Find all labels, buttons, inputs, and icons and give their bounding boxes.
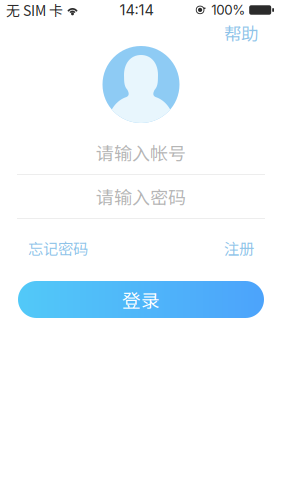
button[interactable]: 注册 (214, 230, 264, 266)
staticText: 请输入密码 (96, 183, 186, 210)
button[interactable]: 帮助 (216, 16, 266, 50)
staticText: 登录 (122, 286, 160, 313)
button[interactable]: 忘记密码 (18, 230, 98, 266)
staticText: 帮助 (224, 20, 258, 46)
staticText: 14:14 (120, 1, 154, 19)
button[interactable]: 登录 (18, 281, 264, 318)
staticText: 请输入帐号 (96, 139, 186, 166)
staticText: 注册 (224, 237, 254, 259)
staticText: 无 SIM 卡 (6, 0, 63, 20)
staticText: 忘记密码 (28, 237, 88, 259)
staticText: 100% (211, 2, 245, 18)
